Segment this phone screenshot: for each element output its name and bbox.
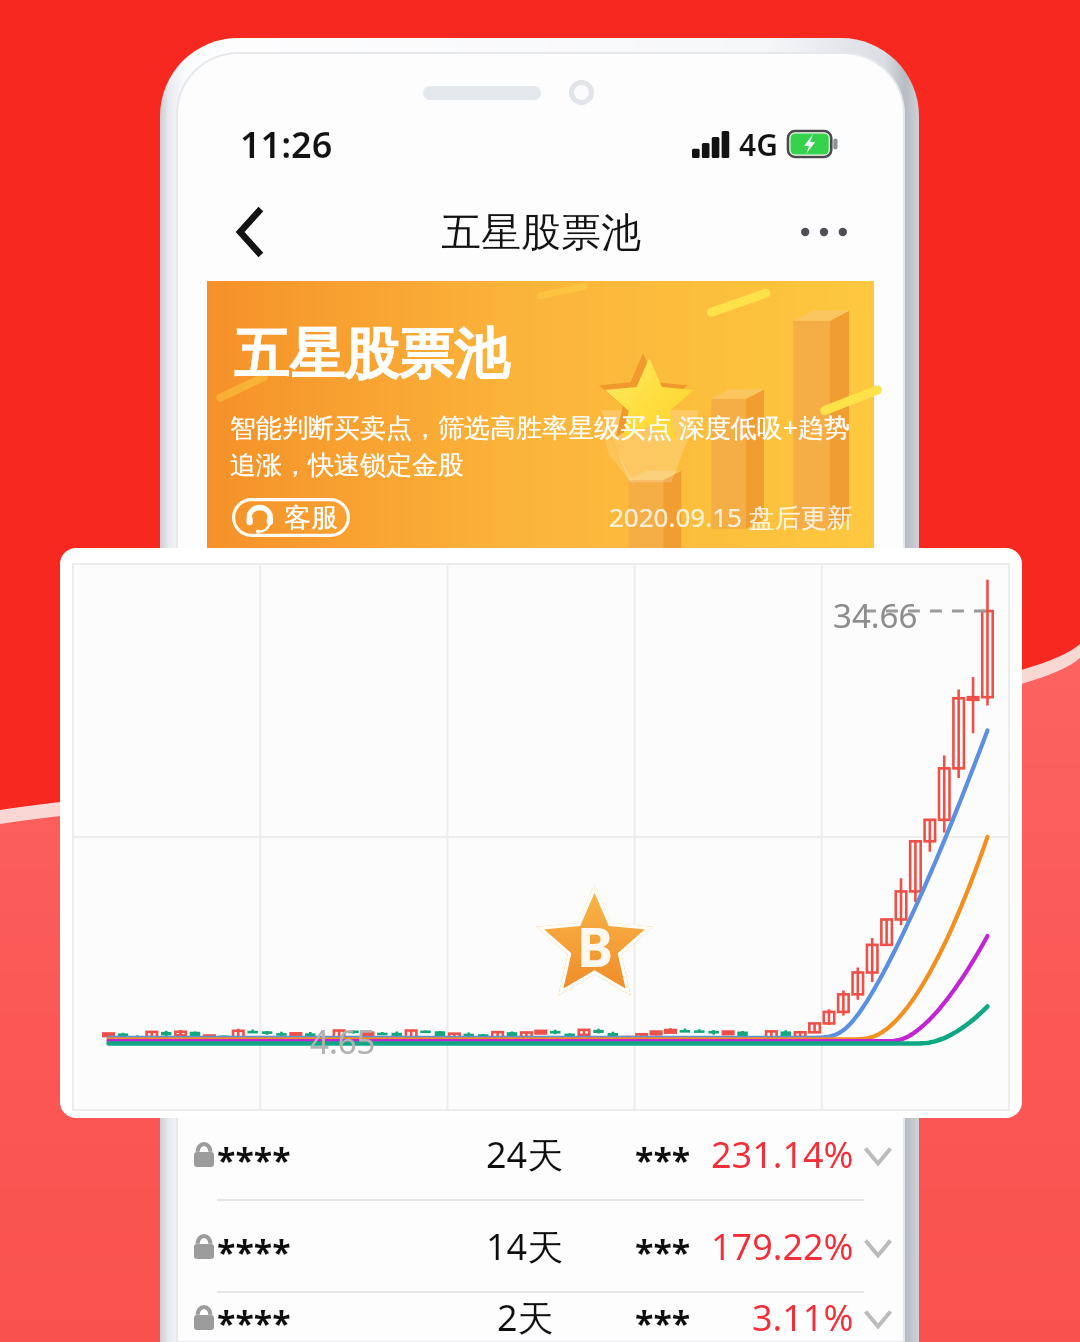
staticText: **** xyxy=(217,1137,291,1183)
staticText: 34.66 xyxy=(833,593,918,638)
staticText: 11:26 xyxy=(240,120,333,169)
staticText: 24天 xyxy=(486,1130,564,1179)
staticText: 3.11% xyxy=(752,1293,854,1341)
staticText: *** xyxy=(635,1300,691,1341)
staticText: 14天 xyxy=(486,1222,564,1271)
staticText: **** xyxy=(217,1229,291,1275)
staticText: 五星股票池 xyxy=(441,207,641,257)
staticText: 2020.09.15 盘后更新 xyxy=(609,499,853,535)
button[interactable]: **** xyxy=(178,1109,903,1199)
button[interactable]: More options xyxy=(789,197,859,267)
staticText: *** xyxy=(635,1229,691,1275)
staticText: 查看 > xyxy=(763,560,856,601)
staticText: 2天 xyxy=(497,1293,554,1341)
staticText: **** xyxy=(217,1300,291,1341)
button[interactable]: Back xyxy=(218,199,284,265)
staticText: 4G xyxy=(739,124,778,165)
staticText: 179.22% xyxy=(711,1222,854,1271)
staticText: 五星股票池 xyxy=(234,320,509,389)
staticText: 4.65 xyxy=(310,1019,376,1064)
button[interactable]: **** xyxy=(178,1293,903,1341)
staticText: 追涨，快速锁定金股 xyxy=(230,449,464,482)
button[interactable]: 客服 xyxy=(232,498,350,537)
button[interactable]: 短线打板抓涨停，看这里>>> xyxy=(207,552,874,608)
staticText: B xyxy=(577,909,613,983)
staticText: *** xyxy=(635,1137,691,1183)
staticText: 231.14% xyxy=(711,1130,854,1179)
staticText: 智能判断买卖点，筛选高胜率星级买点 深度低吸+趋势 xyxy=(230,409,850,445)
staticText: 客服 xyxy=(284,501,338,535)
button[interactable]: **** xyxy=(178,1201,903,1291)
staticText: 短线打板抓涨停，看这里>>> xyxy=(223,560,605,601)
